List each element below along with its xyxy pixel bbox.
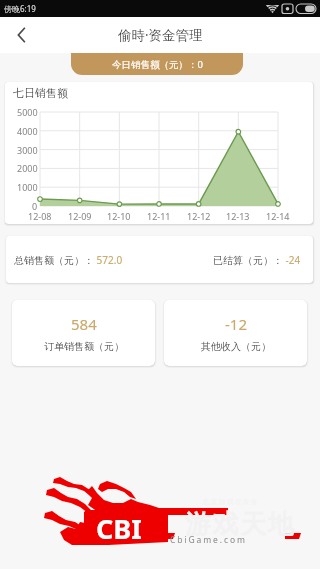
button[interactable]: 584 [12, 300, 155, 366]
staticText: CBI [96, 510, 142, 547]
staticText: 3000 [17, 144, 38, 156]
staticText: 已结算（元）： [213, 254, 283, 267]
staticText: 12-09 [68, 210, 92, 222]
staticText: 2000 [17, 162, 38, 174]
staticText: 12-10 [107, 210, 131, 222]
staticText: CbiGame.com [170, 534, 247, 546]
staticText: 12-12 [187, 210, 211, 222]
staticText: 12-14 [266, 210, 290, 222]
staticText: 584 [71, 314, 97, 334]
staticText: -12 [225, 314, 247, 334]
staticText: 其他收入（元） [201, 340, 271, 353]
staticText: 总销售额（元）： [14, 254, 94, 267]
staticText: 七日销售额 [13, 86, 68, 100]
button[interactable]: -12 [164, 300, 307, 366]
staticText: 12-11 [147, 210, 171, 222]
staticText: 1000 [17, 181, 38, 193]
staticText: 傍晚6:19 [4, 3, 36, 14]
staticText: 12-08 [28, 210, 52, 222]
staticText: 4000 [17, 125, 38, 137]
staticText: 订单销售额（元） [44, 340, 124, 353]
staticText: -24 [283, 253, 301, 267]
button[interactable]: Back [4, 17, 40, 53]
button[interactable]: 今日销售额（元）：0 [71, 53, 243, 75]
staticText: 偷時·资金管理 [118, 26, 203, 44]
staticText: 今日销售额（元）：0 [112, 58, 203, 71]
staticText: 0 [32, 200, 38, 212]
staticText: 5000 [17, 106, 38, 118]
staticText: 572.0 [94, 253, 123, 267]
staticText: 游戏天地 [185, 508, 296, 541]
staticText: 12-13 [226, 210, 250, 222]
